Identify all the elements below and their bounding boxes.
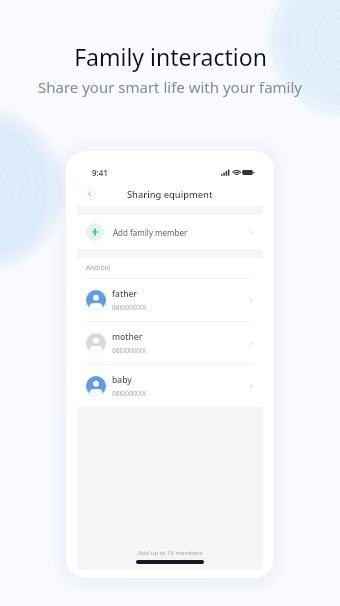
- button[interactable]: mother: [77, 322, 263, 364]
- button[interactable]: father: [77, 279, 263, 321]
- button[interactable]: baby: [77, 365, 263, 407]
- button[interactable]: Back: [84, 188, 96, 200]
- staticText: mother: [112, 331, 143, 343]
- staticText: Sharing equipment: [127, 188, 213, 201]
- staticText: Android: [86, 263, 111, 272]
- staticText: Add family member: [113, 227, 188, 238]
- staticText: Add up to 16 members: [138, 549, 203, 557]
- staticText: 9:41: [92, 167, 108, 178]
- staticText: Family interaction: [74, 41, 267, 72]
- staticText: father: [112, 288, 137, 300]
- button[interactable]: Add family member: [77, 215, 263, 249]
- staticText: Share your smart life with your family: [38, 77, 302, 97]
- staticText: baby: [112, 374, 132, 386]
- staticText: 086XXXXXX: [112, 346, 147, 355]
- staticText: 086XXXXXX: [112, 303, 147, 312]
- staticText: 086XXXXXX: [112, 389, 147, 398]
